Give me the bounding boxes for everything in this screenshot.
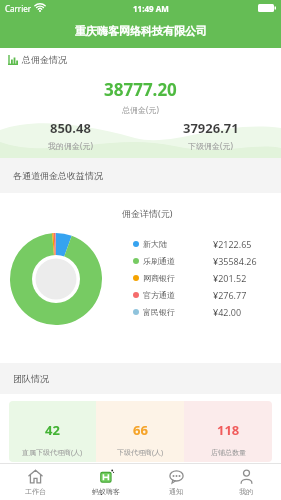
staticText: 下级佣金(元) [188,140,233,151]
staticText: 下级代理商(人) [117,448,164,458]
staticText: 官方通道 [143,290,175,300]
staticText: 店铺总数量 [211,448,246,457]
staticText: 蚂蚁嗨客 [92,487,120,496]
staticText: 佣金详情(元) [122,207,173,219]
staticText: 850.48 [50,119,91,137]
staticText: 118 [217,421,240,439]
staticText: 团队情况 [13,373,49,384]
staticText: 通知 [169,487,183,496]
staticText: 我的佣金(元) [48,140,93,151]
staticText: 38777.20 [104,78,177,101]
staticText: 42 [45,421,60,439]
staticText: 乐刷通道 [143,256,175,266]
staticText: 我的 [239,487,253,496]
staticText: 新大陆 [143,239,167,249]
staticText: 网商银行 [143,273,175,283]
staticText: 37926.71 [183,119,239,137]
staticText: 总佣金(元) [122,104,159,115]
staticText: 重庆嗨客网络科技有限公司 [75,24,207,38]
staticText: 总佣金情况 [22,54,67,65]
button[interactable]: 42 [9,401,96,462]
staticText: ¥201.52 [213,272,247,284]
staticText: 直属下级代理商(人) [22,448,83,458]
staticText: ¥276.77 [213,289,247,301]
staticText: Carrier [5,3,32,14]
staticText: 富民银行 [143,307,175,317]
staticText: 11:49 AM [133,3,169,14]
staticText: 工作台 [25,487,46,496]
button[interactable]: 我的 [211,464,281,500]
staticText: 66 [133,421,148,439]
button[interactable]: 118 [184,401,272,462]
button[interactable]: 通知 [141,464,211,500]
button[interactable]: 蚂蚁嗨客 [71,464,141,500]
staticText: 各通道佣金总收益情况 [13,170,103,181]
button[interactable]: 66 [96,401,184,462]
staticText: ¥35584.26 [213,255,257,267]
staticText: ¥42.00 [213,306,242,318]
staticText: ¥2122.65 [213,238,252,250]
button[interactable]: 工作台 [0,464,71,500]
